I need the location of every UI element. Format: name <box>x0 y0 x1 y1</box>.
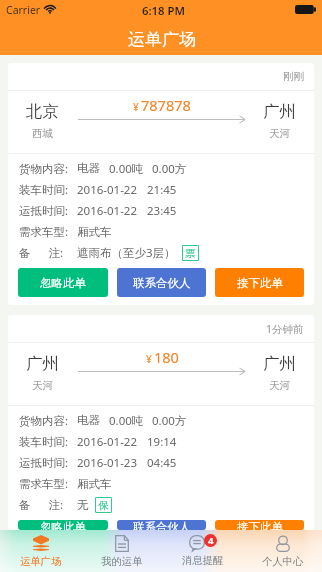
staticText: 787878 <box>141 95 191 115</box>
staticText: 运抵时间: <box>19 455 69 471</box>
staticText: 运单广场 <box>20 555 62 568</box>
staticText: 货物内容: <box>19 413 69 429</box>
staticText: 天河 <box>269 127 291 140</box>
staticText: 联系合伙人 <box>133 520 191 530</box>
staticText: 北京 <box>26 101 59 122</box>
staticText: 备 注: <box>19 497 64 513</box>
staticText: 天河 <box>269 379 291 392</box>
staticText: 忽略此单 <box>40 276 86 290</box>
staticText: 遮雨布（至少3层） <box>77 245 176 261</box>
staticText: 个人中心 <box>262 555 304 568</box>
button[interactable]: 忽略此单 <box>18 268 108 297</box>
button[interactable]: 接下此单 <box>215 520 304 530</box>
staticText: 广州 <box>26 353 59 374</box>
button[interactable]: 接下此单 <box>215 268 304 297</box>
staticText: 19:14 <box>147 434 177 450</box>
staticText: 0.00吨 <box>109 161 144 177</box>
staticText: 我的运单 <box>101 555 143 568</box>
staticText: 装车时间: <box>19 182 69 198</box>
button[interactable]: 运单广场 <box>0 530 81 572</box>
staticText: 西城 <box>32 127 54 140</box>
staticText: 广州 <box>263 353 296 374</box>
staticText: 2016-01-22 <box>77 182 138 198</box>
staticText: 货物内容: <box>19 161 69 177</box>
staticText: 忽略此单 <box>40 520 86 530</box>
staticText: 21:45 <box>147 182 177 198</box>
staticText: 运单广场 <box>128 29 196 50</box>
staticText: 天河 <box>32 379 54 392</box>
staticText: 4 <box>208 534 214 547</box>
staticText: ¥ <box>133 100 139 114</box>
button[interactable]: 个人中心 <box>243 530 322 572</box>
staticText: 电器 <box>77 161 100 175</box>
staticText: 广州 <box>263 101 296 122</box>
staticText: 刚刚 <box>283 70 304 83</box>
staticText: 消息提醒 <box>182 554 224 567</box>
button[interactable]: 联系合伙人 <box>117 520 206 530</box>
staticText: 0.00方 <box>152 161 187 177</box>
button[interactable]: 联系合伙人 <box>117 268 206 297</box>
button[interactable]: 忽略此单 <box>18 520 108 530</box>
staticText: 装车时间: <box>19 434 69 450</box>
staticText: 2016-01-23 <box>77 455 138 471</box>
button[interactable]: 1分钟前 <box>8 315 314 530</box>
staticText: 需求车型: <box>19 224 69 240</box>
staticText: 0.00方 <box>152 413 187 429</box>
staticText: 2016-01-22 <box>77 203 138 219</box>
staticText: 需求车型: <box>19 476 69 492</box>
staticText: 票 <box>185 247 196 260</box>
staticText: 6:18 PM <box>142 3 185 18</box>
staticText: ¥ <box>146 352 152 366</box>
staticText: Carrier <box>6 3 41 17</box>
staticText: 厢式车 <box>77 225 112 239</box>
staticText: 厢式车 <box>77 477 112 491</box>
staticText: 180 <box>154 347 179 367</box>
staticText: 无 <box>77 498 89 512</box>
button[interactable]: 消息提醒 <box>162 530 243 572</box>
staticText: 2016-01-22 <box>77 434 138 450</box>
staticText: 1分钟前 <box>266 322 304 336</box>
button[interactable]: 我的运单 <box>81 530 162 572</box>
staticText: 保 <box>98 499 109 512</box>
staticText: 运抵时间: <box>19 203 69 219</box>
staticText: 接下此单 <box>237 276 283 290</box>
staticText: 联系合伙人 <box>133 276 191 290</box>
button[interactable]: 刚刚 <box>8 63 314 305</box>
staticText: 0.00吨 <box>109 413 144 429</box>
staticText: 备 注: <box>19 245 64 261</box>
staticText: 23:45 <box>147 203 177 219</box>
staticText: 04:45 <box>147 455 177 471</box>
staticText: 电器 <box>77 413 100 427</box>
staticText: 接下此单 <box>237 520 283 530</box>
